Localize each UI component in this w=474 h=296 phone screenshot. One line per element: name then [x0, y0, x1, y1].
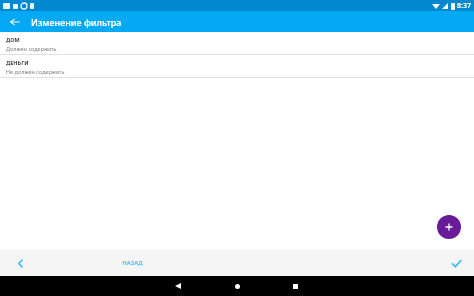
button[interactable]: Добавить — [437, 215, 461, 239]
staticText: Должен содержать — [6, 45, 57, 52]
staticText: Изменение фильтра — [31, 16, 122, 28]
staticText: 8:37 — [457, 1, 471, 11]
staticText: Не должен содержать — [6, 68, 65, 75]
staticText: НАЗАД — [122, 259, 143, 267]
button[interactable]: Предыдущий — [12, 255, 28, 271]
staticText: ДЕНЬГИ — [6, 59, 29, 66]
button[interactable]: Home — [228, 277, 246, 295]
button[interactable]: Back — [169, 277, 187, 295]
button[interactable]: ДОМ — [0, 32, 474, 54]
button[interactable]: Recents — [286, 277, 304, 295]
button[interactable]: Назад — [7, 14, 23, 30]
button[interactable]: Готово — [448, 255, 464, 271]
button[interactable]: ДЕНЬГИ — [0, 55, 474, 77]
button[interactable]: НАЗАД — [116, 256, 149, 270]
staticText: ДОМ — [6, 36, 20, 43]
